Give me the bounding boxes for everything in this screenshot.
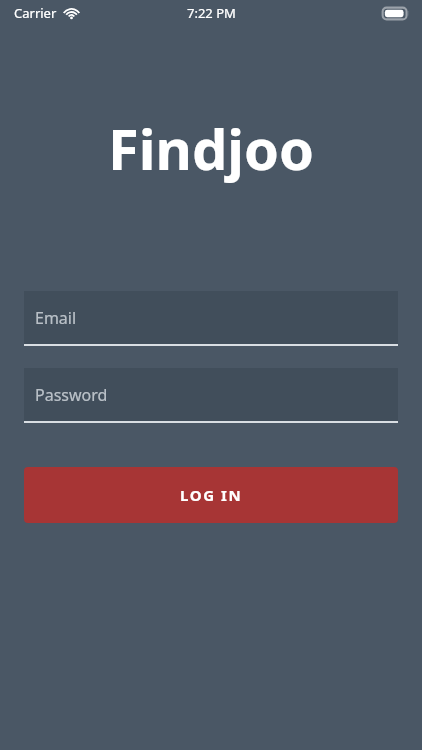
- staticText: Password: [35, 384, 108, 406]
- button[interactable]: Email: [24, 291, 398, 346]
- staticText: Email: [35, 307, 77, 329]
- button[interactable]: Password: [24, 368, 398, 423]
- staticText: Findjoo: [108, 110, 314, 186]
- staticText: Carrier: [14, 4, 57, 22]
- button[interactable]: LOG IN: [24, 467, 398, 523]
- staticText: 7:22 PM: [187, 4, 236, 22]
- staticText: LOG IN: [180, 485, 243, 505]
